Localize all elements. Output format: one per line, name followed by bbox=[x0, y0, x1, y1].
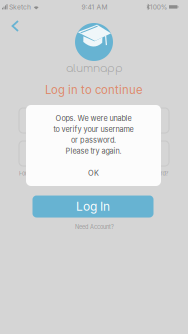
staticText: Sketch bbox=[9, 3, 31, 11]
button[interactable]: Log In bbox=[32, 195, 153, 217]
button[interactable]: OK bbox=[26, 161, 161, 185]
staticText: OK bbox=[88, 169, 99, 177]
staticText: 9:41 AM bbox=[81, 3, 107, 11]
staticText: Log in to continue bbox=[45, 83, 143, 97]
staticText: alumnapp bbox=[66, 63, 123, 74]
staticText: to verify your username bbox=[53, 125, 133, 134]
staticText: Oops. We were unable bbox=[55, 114, 131, 123]
staticText: or password. bbox=[71, 136, 116, 145]
staticText: Forgot Password? bbox=[122, 170, 168, 177]
staticText: Log In bbox=[76, 199, 110, 214]
staticText: Forgot Username? bbox=[19, 170, 66, 177]
button[interactable]: Back bbox=[0, 11, 30, 41]
staticText: 100% bbox=[150, 3, 168, 11]
staticText: Need Account? bbox=[75, 224, 114, 230]
staticText: Please try again. bbox=[65, 147, 121, 155]
